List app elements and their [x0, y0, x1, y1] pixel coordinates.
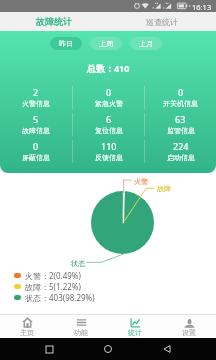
staticText: 状态：403(98.29%): [25, 292, 95, 303]
staticText: 0: [106, 86, 112, 98]
button[interactable]: 主页: [0, 315, 54, 338]
staticText: 屏蔽信息: [22, 153, 50, 162]
button[interactable]: 设置: [162, 315, 216, 338]
staticText: 主页: [20, 328, 34, 337]
staticText: 2: [33, 86, 39, 98]
button[interactable]: 63: [145, 111, 216, 138]
button[interactable]: 巡查统计: [108, 12, 216, 31]
staticText: 开关机信息: [163, 99, 198, 108]
staticText: 反馈信息: [95, 153, 123, 162]
button[interactable]: 0: [73, 84, 144, 111]
button[interactable]: 昨日: [50, 37, 82, 50]
staticText: 224: [173, 140, 189, 152]
staticText: 统计: [128, 328, 142, 337]
staticText: 16:13: [192, 2, 212, 12]
staticText: 故障信息: [22, 126, 50, 135]
button[interactable]: Back: [157, 339, 177, 359]
button[interactable]: 上月: [130, 37, 162, 50]
staticText: 火警信息: [22, 99, 50, 108]
staticText: 0: [33, 140, 39, 152]
staticText: 上周: [99, 39, 113, 48]
staticText: 火警：2(0.49%): [25, 270, 81, 281]
button[interactable]: 故障统计: [0, 12, 108, 31]
staticText: 故障统计: [36, 16, 72, 27]
staticText: 昨日: [59, 39, 73, 48]
staticText: 故障: [157, 184, 171, 193]
button[interactable]: Recents: [39, 339, 59, 359]
button[interactable]: 6: [73, 111, 144, 138]
button[interactable]: 0: [145, 84, 216, 111]
staticText: 0: [178, 86, 184, 98]
staticText: 63: [175, 113, 186, 125]
staticText: 监管信息: [167, 126, 195, 135]
staticText: 6: [106, 113, 112, 125]
staticText: 总数：410: [87, 62, 130, 74]
button[interactable]: 110: [73, 138, 144, 165]
staticText: 巡查统计: [146, 17, 178, 27]
button[interactable]: 2: [0, 84, 72, 111]
button[interactable]: 0: [0, 138, 72, 165]
button[interactable]: 功能: [54, 315, 108, 338]
staticText: 5: [33, 113, 39, 125]
staticText: 复位信息: [95, 126, 123, 135]
staticText: 状态: [71, 259, 85, 268]
staticText: 紧急火警: [95, 99, 123, 108]
staticText: 火警: [134, 177, 148, 186]
staticText: 故障：5(1.22%): [25, 281, 81, 292]
staticText: 功能: [74, 328, 88, 337]
button[interactable]: 上周: [90, 37, 122, 50]
button[interactable]: Home: [98, 339, 118, 359]
button[interactable]: 224: [145, 138, 216, 165]
staticText: 启动信息: [167, 153, 195, 162]
staticText: 上月: [139, 39, 153, 48]
button[interactable]: 统计: [108, 315, 162, 338]
button[interactable]: 5: [0, 111, 72, 138]
staticText: 110: [101, 140, 117, 152]
staticText: 设置: [182, 328, 196, 337]
